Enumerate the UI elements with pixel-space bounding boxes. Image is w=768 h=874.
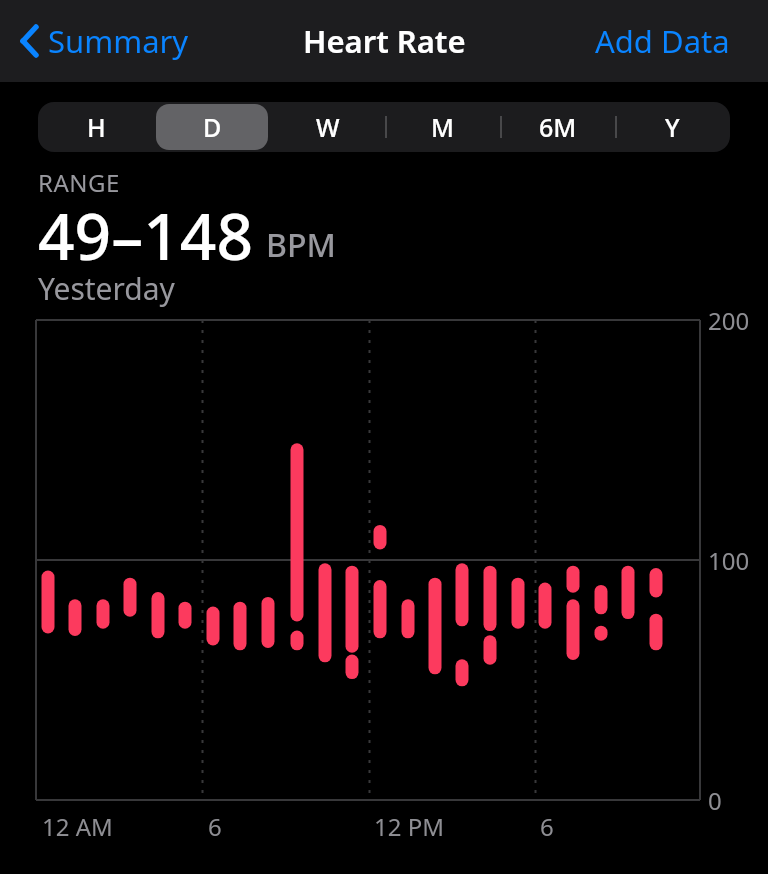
button[interactable]: Add Data (595, 20, 730, 62)
staticText: Y (665, 110, 680, 144)
staticText: 6 (540, 810, 554, 843)
button[interactable]: M (385, 102, 500, 152)
staticText: 12 AM (42, 810, 113, 843)
button[interactable]: D (154, 102, 270, 152)
staticText: W (316, 110, 340, 144)
staticText: 49–148 (38, 192, 254, 279)
staticText: RANGE (38, 166, 120, 199)
button[interactable]: Summary (20, 20, 189, 62)
staticText: 200 (708, 304, 750, 337)
staticText: H (87, 110, 106, 144)
staticText: Heart Rate (303, 20, 466, 62)
staticText: BPM (266, 223, 336, 267)
staticText: M (431, 110, 454, 144)
staticText: 6M (539, 110, 577, 144)
staticText: Yesterday (38, 268, 175, 309)
button[interactable]: Y (615, 102, 730, 152)
staticText: 0 (708, 784, 722, 817)
staticText: Add Data (595, 20, 730, 62)
staticText: 6 (208, 810, 222, 843)
staticText: Summary (48, 20, 189, 62)
button[interactable]: H (38, 102, 154, 152)
button[interactable]: 6M (500, 102, 615, 152)
staticText: 12 PM (374, 810, 444, 843)
staticText: D (203, 110, 222, 144)
staticText: 100 (708, 544, 750, 577)
button[interactable]: W (270, 102, 385, 152)
